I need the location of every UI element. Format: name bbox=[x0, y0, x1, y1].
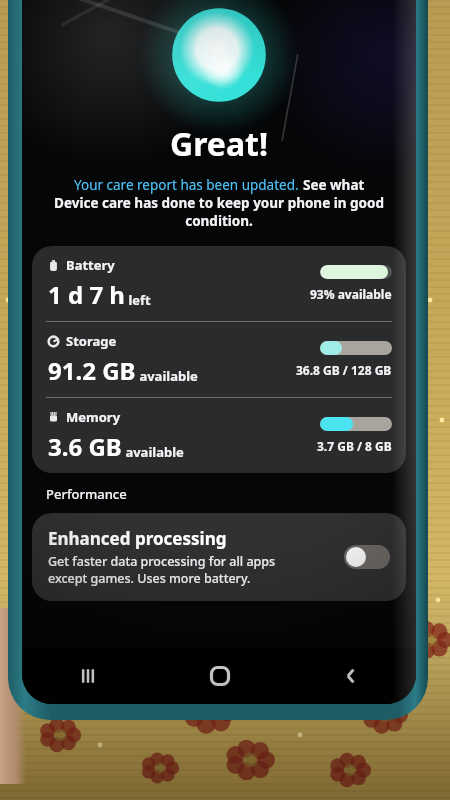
button[interactable]: Enhanced processing toggle bbox=[344, 545, 390, 569]
staticText: available bbox=[136, 367, 198, 385]
staticText: Your care report has been updated. bbox=[74, 176, 303, 194]
staticText: Storage bbox=[66, 332, 117, 350]
button[interactable]: Enhanced processing bbox=[32, 513, 406, 601]
staticText: except games. Uses more battery. bbox=[48, 570, 251, 587]
staticText: Great! bbox=[22, 122, 416, 166]
staticText: available bbox=[122, 443, 184, 461]
staticText: 3.7 GB / 8 GB bbox=[317, 438, 392, 454]
staticText: Battery bbox=[66, 256, 115, 274]
staticText: Get faster data processing for all apps bbox=[48, 553, 276, 570]
staticText: Memory bbox=[66, 408, 121, 426]
staticText: left bbox=[125, 291, 151, 309]
button[interactable]: Memory bbox=[32, 398, 406, 473]
button[interactable]: Home bbox=[154, 648, 285, 704]
staticText: 3.6 GB bbox=[48, 430, 122, 463]
staticText: condition. bbox=[185, 212, 253, 230]
staticText: 1 d 7 h bbox=[48, 278, 125, 311]
staticText: See what bbox=[303, 176, 365, 194]
staticText: Performance bbox=[46, 485, 127, 503]
button[interactable]: Battery bbox=[32, 246, 406, 321]
staticText: 91.2 GB bbox=[48, 354, 136, 387]
button[interactable]: Back bbox=[285, 648, 416, 704]
button[interactable]: Storage bbox=[32, 322, 406, 397]
button[interactable]: Recents bbox=[22, 648, 154, 704]
staticText: 36.8 GB / 128 GB bbox=[296, 362, 392, 378]
staticText: 93% available bbox=[310, 286, 392, 302]
staticText: Device care has done to keep your phone … bbox=[54, 194, 384, 212]
staticText: Enhanced processing bbox=[48, 527, 227, 550]
